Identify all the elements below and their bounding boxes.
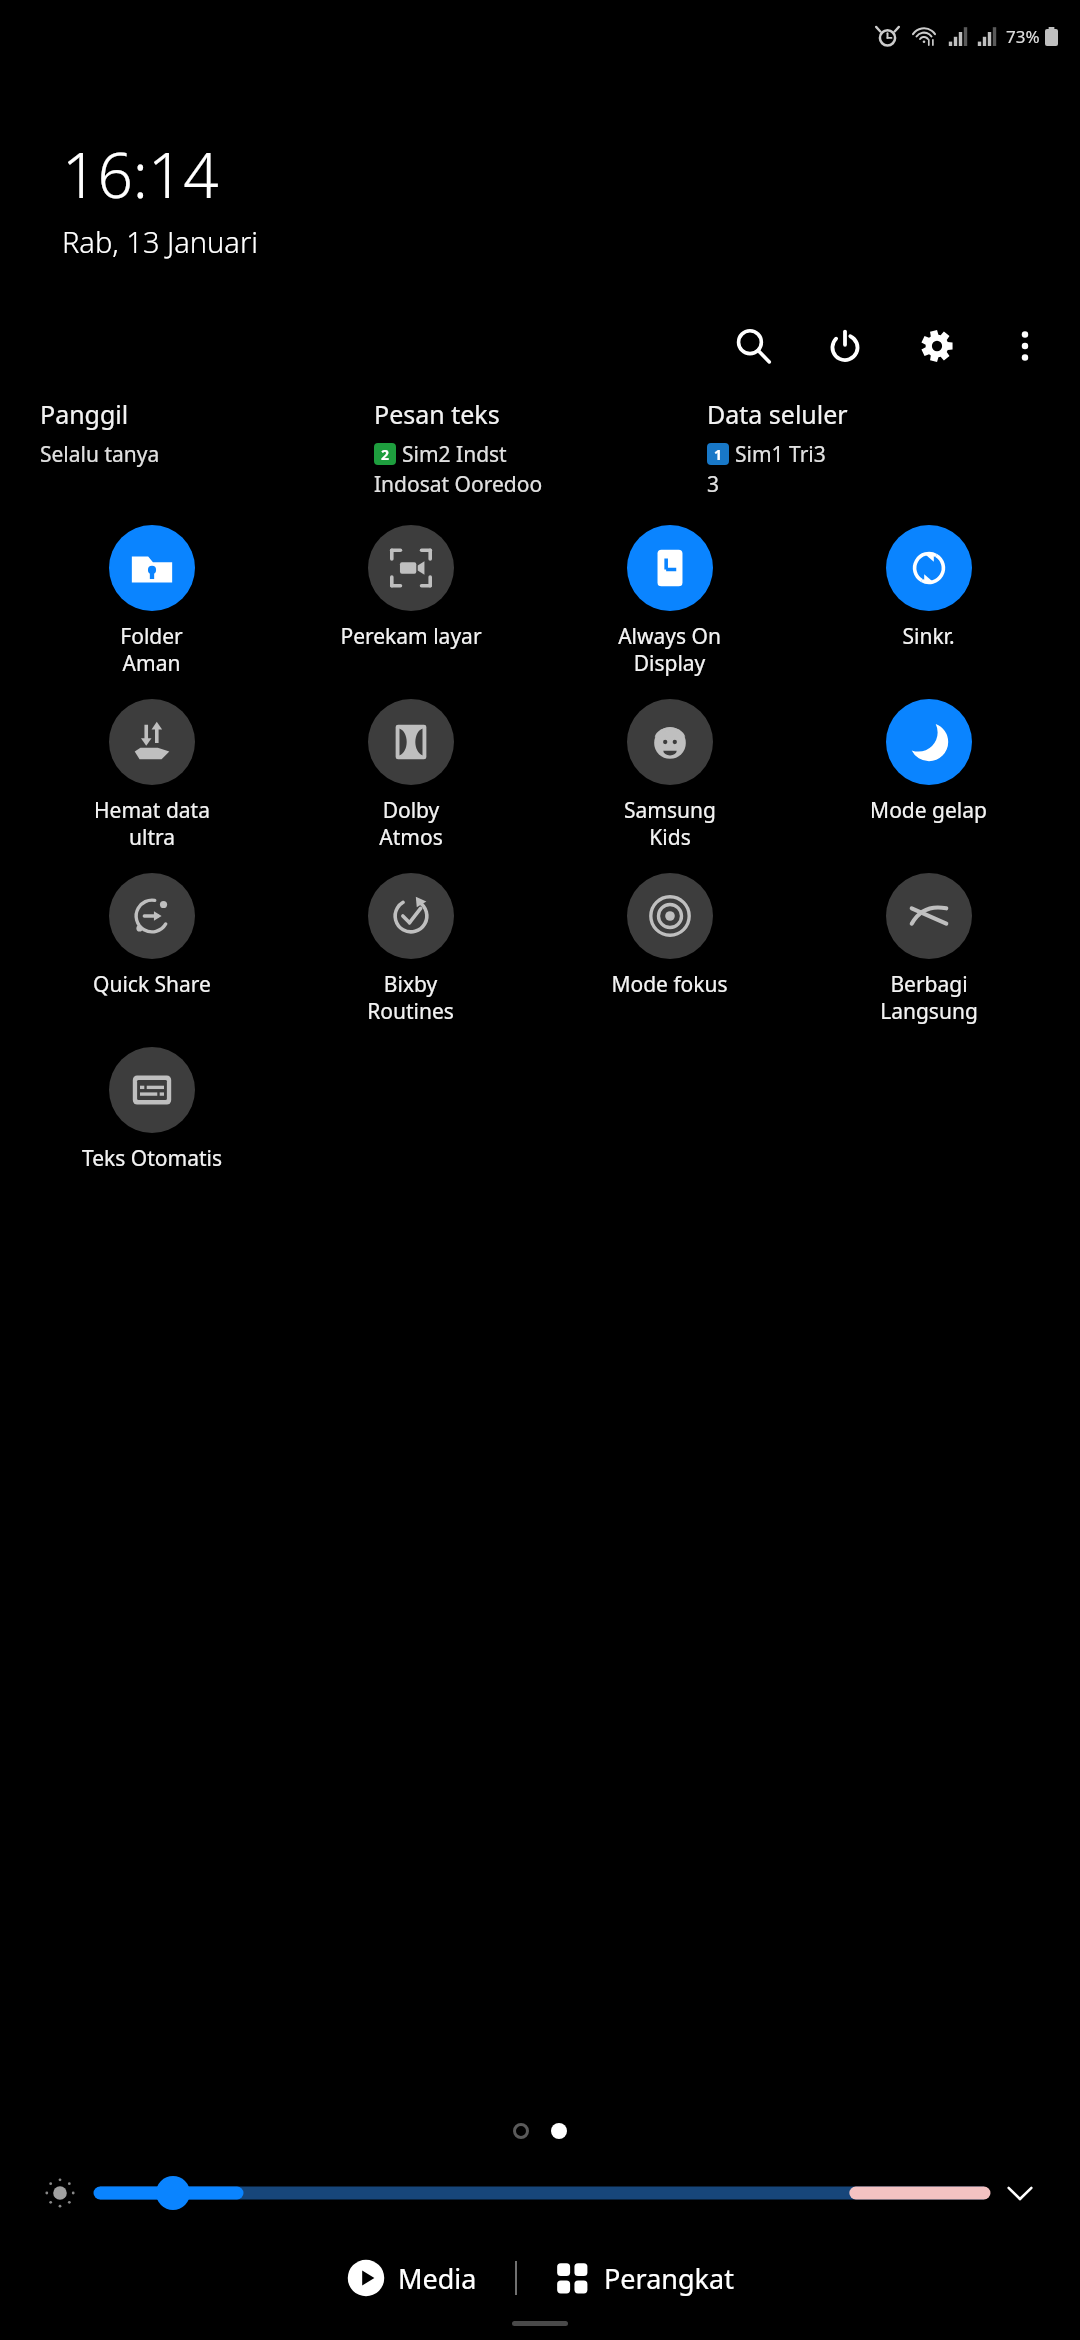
staticText: 1 bbox=[714, 445, 723, 464]
button[interactable]: Folder Aman bbox=[22, 521, 281, 681]
button[interactable]: Settings bbox=[908, 317, 966, 375]
button[interactable]: Samsung Kids bbox=[540, 695, 799, 855]
staticText: Always On Display bbox=[618, 622, 721, 677]
staticText: Media bbox=[398, 2260, 477, 2297]
staticText: Teks Otomatis bbox=[82, 1144, 222, 1173]
staticText: Sinkr. bbox=[902, 622, 955, 651]
button[interactable]: More options bbox=[996, 317, 1054, 375]
button[interactable]: Panggil bbox=[40, 397, 374, 469]
button[interactable]: Always On Display bbox=[540, 521, 799, 681]
button[interactable]: Bixby Routines bbox=[281, 869, 540, 1029]
staticText: Selalu tanya bbox=[40, 440, 160, 469]
staticText: Samsung Kids bbox=[624, 796, 716, 851]
button[interactable]: Quick Share bbox=[22, 869, 281, 1003]
button[interactable]: Brightness slider bbox=[100, 2167, 984, 2219]
button[interactable]: Dolby Atmos bbox=[281, 695, 540, 855]
button[interactable]: Power bbox=[816, 317, 874, 375]
staticText: 16:14 bbox=[62, 132, 219, 216]
staticText: Folder Aman bbox=[120, 622, 183, 677]
staticText: Mode fokus bbox=[611, 970, 728, 999]
staticText: Perekam layar bbox=[340, 622, 482, 651]
staticText: 2 bbox=[381, 445, 390, 464]
staticText: Indosat Ooredoo bbox=[374, 470, 543, 499]
button[interactable]: Pesan teks bbox=[374, 397, 707, 499]
staticText: Mode gelap bbox=[870, 796, 987, 825]
staticText: Sim1 Tri3 bbox=[735, 440, 826, 469]
staticText: Bixby Routines bbox=[367, 970, 454, 1025]
button[interactable]: Auto brightness bbox=[34, 2167, 86, 2219]
button[interactable]: Sinkr. bbox=[799, 521, 1058, 655]
button[interactable]: Media bbox=[333, 2249, 491, 2307]
staticText: 3 bbox=[707, 470, 720, 499]
staticText: Sim2 Indst bbox=[402, 440, 507, 469]
button[interactable]: Mode fokus bbox=[540, 869, 799, 1003]
staticText: Data seluler bbox=[707, 397, 848, 431]
staticText: Quick Share bbox=[93, 970, 211, 999]
button[interactable]: Berbagi Langsung bbox=[799, 869, 1058, 1029]
button[interactable]: Teks Otomatis bbox=[22, 1043, 281, 1177]
staticText: Dolby Atmos bbox=[379, 796, 443, 851]
button[interactable]: Expand brightness settings bbox=[994, 2167, 1046, 2219]
button[interactable]: Data seluler bbox=[707, 397, 1040, 499]
staticText: Rab, 13 Januari bbox=[62, 222, 259, 261]
button[interactable]: Perekam layar bbox=[281, 521, 540, 655]
button[interactable]: Perangkat bbox=[541, 2250, 748, 2307]
staticText: Panggil bbox=[40, 397, 129, 431]
button[interactable]: Mode gelap bbox=[799, 695, 1058, 829]
staticText: 73% bbox=[1006, 25, 1040, 48]
button[interactable]: Search bbox=[724, 317, 782, 375]
staticText: Perangkat bbox=[604, 2260, 734, 2297]
button[interactable]: Hemat data ultra bbox=[22, 695, 281, 855]
staticText: Pesan teks bbox=[374, 397, 500, 431]
staticText: Berbagi Langsung bbox=[880, 970, 978, 1025]
staticText: Hemat data ultra bbox=[94, 796, 210, 851]
